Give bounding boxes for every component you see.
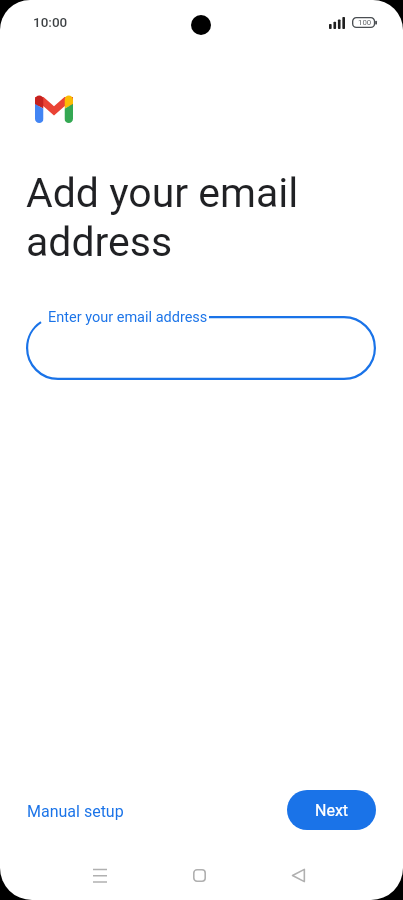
button[interactable]: Enter your email address [26,316,376,380]
staticText: Add your email address [26,169,311,266]
staticText: 100 [358,18,372,27]
staticText: 10:00 [33,14,68,30]
staticText: Manual setup [27,802,124,821]
button[interactable]: Next [287,790,376,830]
button[interactable]: Recent apps [79,855,120,896]
button[interactable]: Manual setup [21,797,130,826]
staticText: Next [315,801,349,820]
button[interactable]: Back [278,855,319,896]
staticText: Enter your email address [48,309,208,326]
button[interactable]: Home [179,855,220,896]
